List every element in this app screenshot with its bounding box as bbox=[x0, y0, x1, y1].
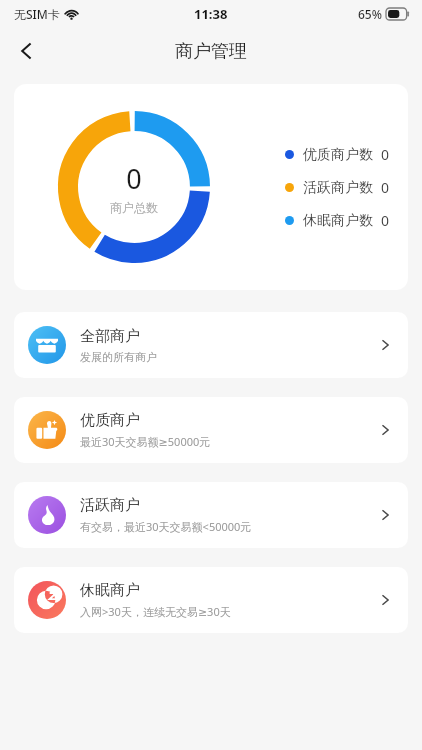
button[interactable]: 优质商户 bbox=[14, 397, 408, 463]
staticText: 0 bbox=[381, 145, 390, 164]
staticText: 优质商户 bbox=[80, 411, 140, 430]
staticText: 休眠商户数 bbox=[303, 212, 373, 230]
staticText: 无SIM卡 bbox=[14, 6, 60, 22]
button[interactable]: 活跃商户 bbox=[14, 482, 408, 548]
staticText: 最近30天交易额≥50000元 bbox=[80, 434, 211, 449]
staticText: 活跃商户数 bbox=[303, 179, 373, 197]
staticText: 有交易，最近30天交易额<50000元 bbox=[80, 519, 252, 534]
staticText: 商户管理 bbox=[175, 40, 247, 63]
staticText: 发展的所有商户 bbox=[80, 350, 157, 364]
button[interactable]: 休眠商户 bbox=[14, 567, 408, 633]
staticText: 休眠商户 bbox=[80, 581, 140, 600]
staticText: 入网>30天，连续无交易≥30天 bbox=[80, 604, 231, 619]
staticText: 优质商户数 bbox=[303, 146, 373, 164]
staticText: 11:38 bbox=[194, 5, 228, 23]
staticText: 65% bbox=[358, 6, 382, 22]
staticText: 商户总数 bbox=[110, 200, 158, 215]
staticText: 全部商户 bbox=[80, 327, 140, 346]
staticText: 0 bbox=[126, 160, 142, 197]
staticText: 0 bbox=[381, 211, 390, 230]
staticText: 0 bbox=[381, 178, 390, 197]
button[interactable]: 返回 bbox=[6, 30, 48, 72]
staticText: 活跃商户 bbox=[80, 496, 140, 515]
button[interactable]: 全部商户 bbox=[14, 312, 408, 378]
